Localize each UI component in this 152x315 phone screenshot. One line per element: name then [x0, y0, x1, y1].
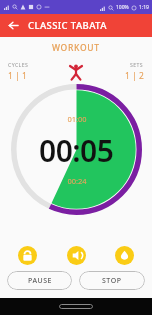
- button[interactable]: Brightness: [115, 246, 134, 265]
- staticText: PAUSE: [28, 276, 52, 286]
- button[interactable]: STOP: [79, 271, 145, 290]
- staticText: 1:19: [139, 4, 149, 11]
- staticText: WORKOUT: [52, 42, 100, 54]
- staticText: 00:24: [67, 176, 87, 186]
- button[interactable]: Lock: [18, 246, 37, 265]
- staticText: 1 | 1: [8, 70, 27, 82]
- staticText: SETS: [130, 61, 144, 68]
- staticText: 100%: [116, 4, 129, 11]
- staticText: 00:05: [39, 130, 114, 171]
- staticText: CYCLES: [8, 61, 29, 68]
- staticText: CLASSIC TABATA: [28, 19, 107, 32]
- button[interactable]: Back: [5, 17, 22, 34]
- button[interactable]: PAUSE: [7, 271, 72, 290]
- button[interactable]: Sound: [67, 246, 86, 265]
- staticText: 1 | 2: [125, 70, 144, 82]
- staticText: STOP: [102, 276, 122, 286]
- staticText: 01:00: [67, 114, 87, 124]
